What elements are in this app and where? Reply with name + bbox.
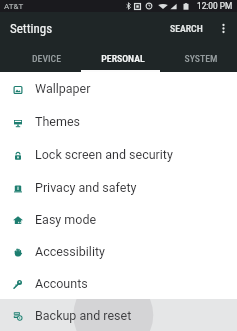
staticText: Accounts — [35, 276, 88, 291]
button[interactable]: SEARCH — [163, 15, 210, 42]
button[interactable]: Themes — [0, 105, 237, 138]
button[interactable]: Accessibility — [0, 235, 237, 267]
staticText: Wallpaper — [35, 81, 91, 96]
staticText: Privacy and safety — [35, 180, 137, 195]
staticText: AT&T — [4, 2, 24, 11]
button[interactable]: Wallpaper — [0, 72, 237, 105]
button[interactable]: More options — [210, 15, 237, 42]
staticText: Settings — [10, 21, 53, 36]
button[interactable]: Privacy and safety — [0, 171, 237, 203]
button[interactable]: Accounts — [0, 267, 237, 299]
staticText: Lock screen and security — [35, 147, 173, 162]
staticText: SYSTEM — [184, 53, 218, 64]
staticText: Backup and reset — [35, 308, 132, 323]
button[interactable]: Backup and reset — [0, 299, 237, 331]
staticText: DEVICE — [32, 53, 61, 64]
staticText: Themes — [35, 114, 81, 129]
staticText: PERSONAL — [101, 53, 145, 64]
staticText: Easy mode — [35, 212, 97, 227]
staticText: SEARCH — [170, 23, 203, 34]
staticText: 12:00 PM — [197, 1, 233, 11]
button[interactable]: SYSTEM — [158, 44, 237, 72]
button[interactable]: Lock screen and security — [0, 138, 237, 171]
button[interactable]: Easy mode — [0, 203, 237, 235]
button[interactable]: PERSONAL — [79, 44, 158, 72]
staticText: Accessibility — [35, 244, 105, 259]
button[interactable]: DEVICE — [0, 44, 79, 72]
